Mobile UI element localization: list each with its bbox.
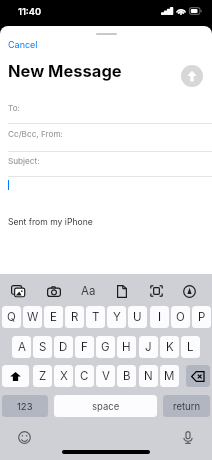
staticText: B [123,369,131,383]
button[interactable]: C [75,365,94,387]
button[interactable] [0,96,212,122]
staticText: H [122,340,131,354]
button[interactable]: A [12,336,31,358]
button[interactable]: P [192,306,211,328]
button[interactable]: X [54,365,73,387]
staticText: To: [8,103,20,113]
button[interactable]: Scan document [143,278,169,304]
button[interactable] [0,122,212,148]
button[interactable]: M [160,365,179,387]
staticText: O [176,310,185,324]
staticText: Subject: [8,156,40,166]
button[interactable]: W [23,306,42,328]
staticText: I [158,310,162,324]
button[interactable]: J [139,336,158,358]
staticText: E [50,310,57,324]
staticText: R [71,310,79,324]
button[interactable]: H [117,336,136,358]
staticText: X [60,369,68,383]
staticText: P [198,310,206,324]
staticText: F [81,340,88,354]
button[interactable]: Cancel [4,37,42,52]
button[interactable]: Document [109,278,135,304]
button[interactable]: Markup [176,278,202,304]
button[interactable]: space [54,395,157,417]
button[interactable]: Photos [5,278,31,304]
button[interactable]: Send [181,65,203,87]
staticText: 11:40 [18,6,42,17]
button[interactable]: Camera [41,278,67,304]
button[interactable]: K [160,336,179,358]
button[interactable]: L [181,336,200,358]
button[interactable]: D [54,336,73,358]
staticText: Y [113,310,121,324]
button[interactable]: T [86,306,105,328]
staticText: Q [7,310,16,324]
button[interactable]: V [96,365,115,387]
button[interactable]: Q [2,306,21,328]
button[interactable]: Backspace [186,365,210,387]
button[interactable]: Shift [2,365,29,387]
staticText: 123 [17,401,33,412]
staticText: C [80,369,89,383]
staticText: V [102,369,110,383]
button[interactable]: U [128,306,147,328]
button[interactable] [0,149,212,175]
staticText: A [18,340,26,354]
staticText: New Message [8,61,122,81]
staticText: Cancel [8,39,38,50]
staticText: Cc/Bcc, From: [8,129,63,139]
staticText: space [92,401,120,412]
button[interactable]: 123 [2,395,48,417]
button[interactable]: R [65,306,84,328]
button[interactable]: Dictate [178,427,198,447]
staticText: Z [39,369,47,383]
button[interactable]: N [139,365,158,387]
button[interactable]: Emoji [14,427,34,447]
staticText: N [144,369,153,383]
staticText: L [187,340,194,354]
button[interactable]: return [163,395,210,417]
staticText: return [173,401,201,412]
staticText: M [164,369,175,383]
staticText: Sent from my iPhone [8,217,93,227]
button[interactable]: B [117,365,136,387]
staticText: G [101,340,110,354]
staticText: Aa [81,284,96,298]
button[interactable]: Y [107,306,126,328]
staticText: D [59,340,68,354]
button[interactable]: G [96,336,115,358]
button[interactable]: O [171,306,190,328]
button[interactable]: E [44,306,63,328]
button[interactable]: F [75,336,94,358]
staticText: J [145,340,152,354]
button[interactable]: Z [33,365,52,387]
staticText: S [39,340,47,354]
staticText: K [166,340,174,354]
button[interactable]: Aa [75,278,101,304]
button[interactable]: I [150,306,169,328]
staticText: T [92,310,100,324]
staticText: W [27,310,39,324]
staticText: U [133,310,142,324]
button[interactable]: S [33,336,52,358]
